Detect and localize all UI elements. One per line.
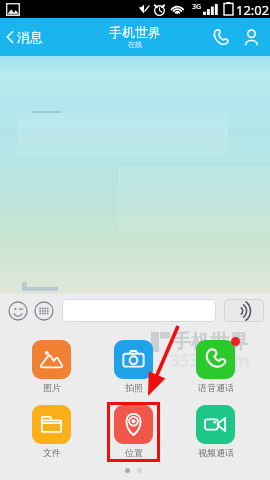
button[interactable]: 文件 bbox=[25, 402, 78, 462]
button[interactable]: Keyboard bbox=[31, 298, 56, 323]
button[interactable]: 视频通话 bbox=[189, 402, 242, 462]
staticText: 12:02 bbox=[236, 1, 270, 19]
staticText: 视频通话 bbox=[198, 447, 234, 458]
button[interactable]: Voice message bbox=[224, 299, 264, 322]
button[interactable] bbox=[62, 299, 216, 322]
button[interactable]: 位置 bbox=[107, 402, 160, 462]
staticText: 消息 bbox=[17, 29, 43, 45]
staticText: 手机世界 bbox=[109, 24, 161, 40]
staticText: 3G bbox=[192, 2, 202, 12]
button[interactable]: 消息 bbox=[0, 23, 51, 51]
button[interactable]: Emoji bbox=[5, 298, 30, 323]
button[interactable]: Contact bbox=[237, 23, 265, 51]
staticText: 3533.com bbox=[170, 349, 250, 372]
staticText: 位置 bbox=[125, 447, 143, 458]
staticText: 图片 bbox=[43, 382, 61, 393]
staticText: 手机世界 bbox=[172, 330, 248, 354]
staticText: 文件 bbox=[43, 447, 61, 458]
staticText: 语音通话 bbox=[198, 382, 234, 393]
button[interactable]: 图片 bbox=[25, 337, 78, 397]
staticText: 拍照 bbox=[125, 382, 143, 393]
button[interactable]: Call bbox=[207, 23, 235, 51]
button[interactable]: 语音通话 bbox=[189, 337, 242, 397]
button[interactable]: 拍照 bbox=[107, 337, 160, 397]
staticText: 在线 bbox=[128, 40, 142, 49]
